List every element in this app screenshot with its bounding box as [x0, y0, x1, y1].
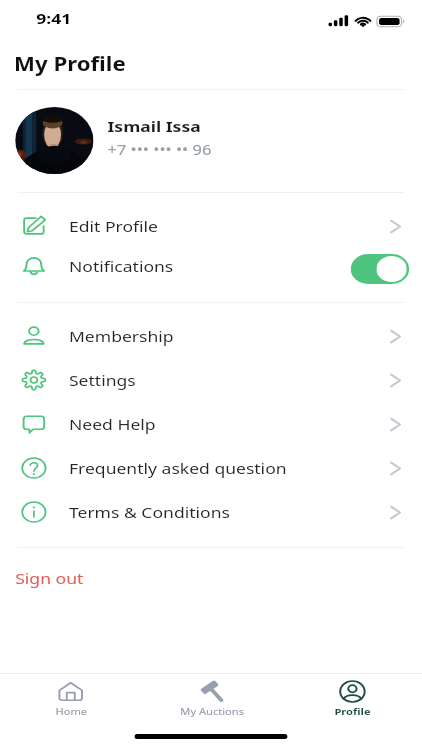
staticText: My Auctions	[180, 705, 244, 718]
staticText: Home	[55, 705, 88, 718]
button[interactable]: My Auctions	[141, 674, 282, 718]
button[interactable]: Home	[0, 674, 141, 718]
staticText: 9:41	[36, 8, 71, 28]
staticText: Sign out	[15, 568, 84, 588]
button[interactable]: Notifications toggle	[351, 254, 409, 284]
button[interactable]: Membership	[0, 314, 422, 358]
staticText: Membership	[69, 326, 174, 346]
button[interactable]: Notifications	[0, 244, 422, 288]
staticText: Profile	[334, 705, 370, 718]
staticText: Settings	[69, 370, 137, 390]
staticText: Edit Profile	[69, 216, 159, 236]
staticText: Notifications	[69, 256, 174, 276]
button[interactable]: Terms & Conditions	[0, 490, 422, 534]
staticText: +7 ••• ••• •• 96	[107, 140, 211, 159]
staticText: Ismail Issa	[107, 116, 201, 136]
staticText: Terms & Conditions	[69, 502, 230, 522]
button[interactable]: Settings	[0, 358, 422, 402]
staticText: Frequently asked question	[69, 458, 288, 478]
staticText: My Profile	[14, 51, 126, 77]
button[interactable]: Frequently asked question	[0, 446, 422, 490]
button[interactable]: Edit Profile	[0, 204, 422, 248]
button[interactable]: Ismail Issa	[0, 107, 422, 175]
staticText: Need Help	[69, 414, 157, 434]
button[interactable]: Sign out	[0, 558, 422, 598]
button[interactable]: Need Help	[0, 402, 422, 446]
button[interactable]: Profile	[282, 674, 422, 718]
button[interactable]: My Profile	[14, 51, 126, 77]
